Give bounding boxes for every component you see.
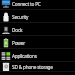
button[interactable]: SD & phone storage bbox=[0, 62, 75, 72]
staticText: SD & phone storage bbox=[12, 64, 53, 70]
staticText: Security bbox=[12, 14, 29, 20]
staticText: Power bbox=[12, 40, 25, 46]
staticText: Applications bbox=[12, 53, 37, 59]
staticText: Connect to PC bbox=[12, 1, 41, 7]
button[interactable]: Security bbox=[0, 10, 75, 23]
button[interactable]: Dock bbox=[0, 23, 75, 36]
staticText: Dock bbox=[12, 27, 23, 33]
button[interactable]: Connect to PC bbox=[0, 0, 75, 10]
button[interactable]: Power bbox=[0, 36, 75, 49]
button[interactable]: Applications bbox=[0, 49, 75, 62]
